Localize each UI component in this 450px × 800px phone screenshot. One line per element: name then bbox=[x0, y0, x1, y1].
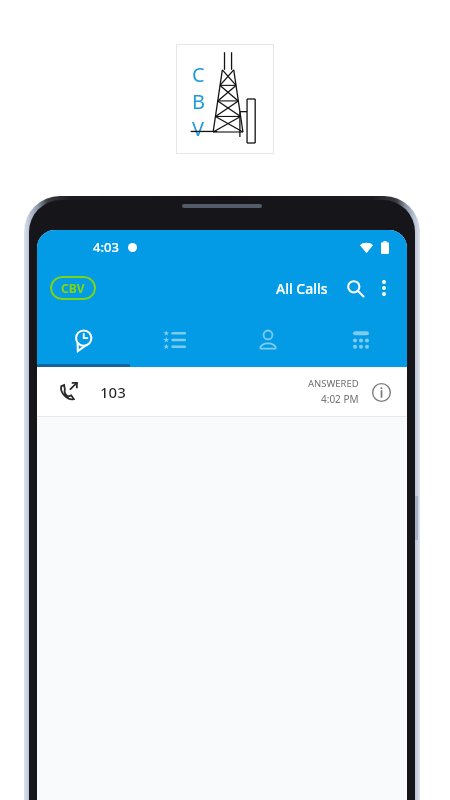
staticText: C bbox=[192, 61, 205, 88]
staticText: B bbox=[192, 88, 205, 115]
staticText: 4:02 PM bbox=[321, 392, 359, 406]
staticText: CBV bbox=[61, 280, 85, 296]
button[interactable]: Search bbox=[340, 273, 370, 303]
button[interactable]: Contacts bbox=[221, 312, 314, 367]
staticText: All Calls bbox=[276, 279, 328, 298]
button[interactable]: 103 bbox=[37, 367, 407, 416]
staticText: ANSWERED bbox=[308, 377, 359, 390]
staticText: 4:03 bbox=[93, 238, 119, 256]
button[interactable]: Dial pad bbox=[314, 312, 407, 367]
button[interactable]: Call details bbox=[368, 379, 394, 405]
staticText: V bbox=[192, 115, 204, 142]
button[interactable]: Recents bbox=[37, 312, 129, 367]
button[interactable]: Speed dial bbox=[129, 312, 221, 367]
button[interactable]: More options bbox=[370, 274, 398, 302]
button[interactable]: CBV bbox=[50, 276, 96, 300]
staticText: 103 bbox=[100, 382, 126, 402]
button[interactable]: All Calls bbox=[272, 273, 332, 304]
